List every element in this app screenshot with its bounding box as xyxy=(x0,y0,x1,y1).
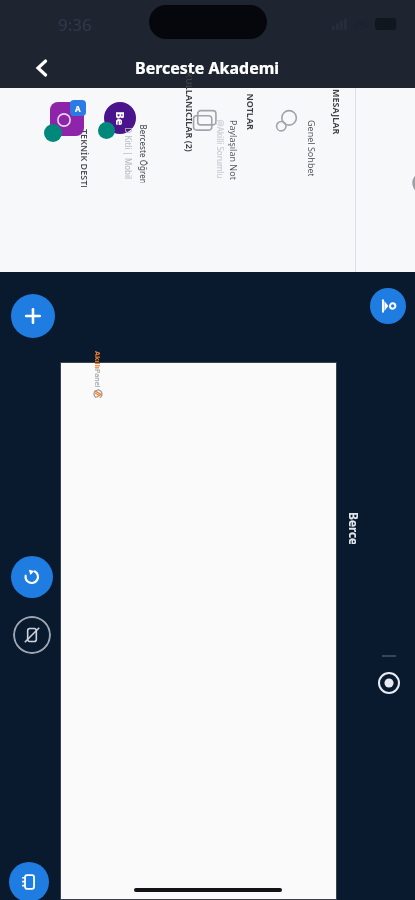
button[interactable]: Genel Sohbet xyxy=(268,96,324,264)
staticText: 9:36 xyxy=(58,13,92,36)
button[interactable]: A xyxy=(42,96,100,264)
button[interactable]: Select screen xyxy=(378,672,400,694)
button[interactable]: Paylaşılan Notlar xyxy=(186,96,246,264)
staticText: Be xyxy=(112,111,127,125)
staticText: Berceste Akademi 1 xyxy=(346,512,362,544)
staticText: Berceste Öğrenci (Sev) xyxy=(137,124,148,182)
button[interactable]: Undo xyxy=(11,556,53,598)
staticText: @Akilli Sorumlu tarafından xyxy=(214,119,225,179)
button[interactable]: Add xyxy=(11,294,55,338)
staticText: Panel xyxy=(93,369,103,388)
staticText: Berceste Akademi xyxy=(135,57,280,79)
button[interactable]: Notebook xyxy=(9,862,49,900)
staticText: NOTLAR xyxy=(244,93,256,130)
staticText: Genel Sohbet xyxy=(306,120,318,176)
staticText: TEKNİK DESTEK xyxy=(79,129,91,187)
staticText: A xyxy=(75,103,81,114)
button[interactable]: Back xyxy=(22,48,62,88)
staticText: D Kitli | Mobil xyxy=(122,127,133,179)
button[interactable]: Flip page xyxy=(370,288,406,324)
button[interactable]: Akıllı xyxy=(60,362,337,900)
staticText: MESAJLAR xyxy=(331,89,343,135)
staticText: Akıllı xyxy=(411,84,415,125)
button[interactable]: Cast device xyxy=(13,616,51,654)
staticText: KULLANICILAR (2) xyxy=(184,72,196,152)
button[interactable]: Berceste Akademi 1 xyxy=(372,520,404,700)
staticText: Paylaşılan Notlar xyxy=(228,120,240,180)
button[interactable]: Be xyxy=(98,96,156,264)
staticText: Akıllı xyxy=(93,351,103,369)
